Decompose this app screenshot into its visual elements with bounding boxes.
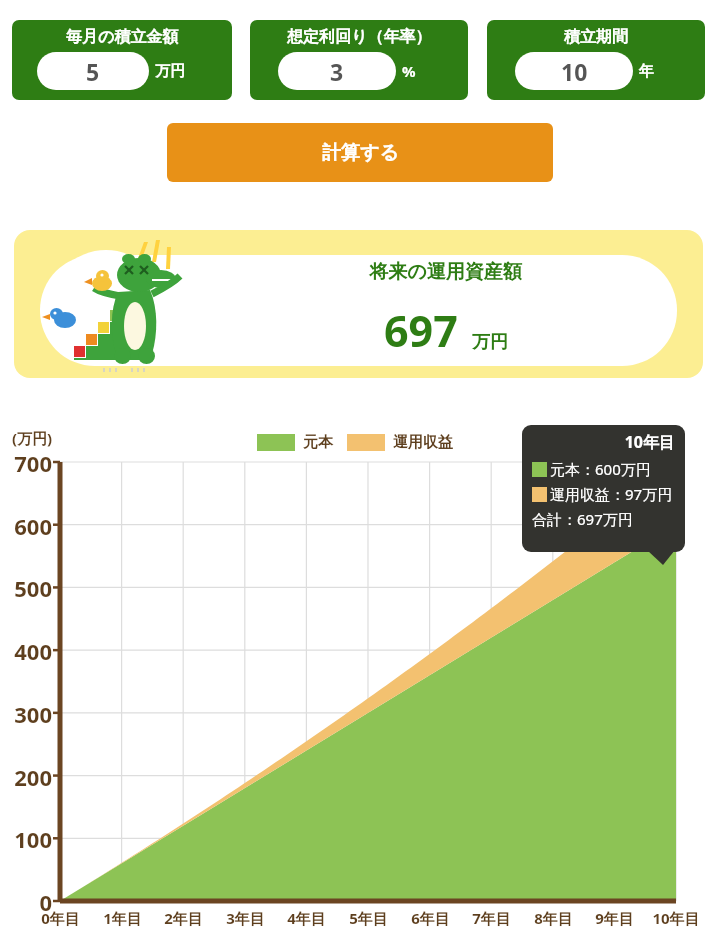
staticText: 0年目: [41, 908, 80, 928]
staticText: 合計：697万円: [532, 509, 633, 529]
staticText: 積立期間: [564, 27, 628, 47]
staticText: 運用収益: [393, 433, 453, 452]
staticText: 5: [86, 56, 100, 87]
staticText: 7年目: [472, 908, 511, 928]
staticText: 計算する: [322, 141, 399, 165]
staticText: 2年目: [164, 908, 203, 928]
staticText: 万円: [155, 62, 185, 81]
staticText: 9年目: [595, 908, 634, 928]
staticText: 200: [14, 762, 52, 792]
staticText: 600: [14, 511, 52, 541]
staticText: 100: [14, 824, 52, 854]
button[interactable]: 計算する: [167, 123, 553, 182]
staticText: 毎月の積立金額: [66, 27, 179, 47]
staticText: 年: [639, 62, 654, 81]
staticText: 697: [384, 301, 458, 360]
staticText: 10: [561, 56, 588, 87]
staticText: 将来の運用資産額: [369, 260, 522, 284]
staticText: 1年目: [103, 908, 142, 928]
staticText: 0: [39, 887, 52, 917]
staticText: (万円): [12, 428, 53, 448]
staticText: 10年目: [652, 908, 700, 928]
staticText: 元本: [303, 433, 333, 452]
staticText: 5年目: [349, 908, 388, 928]
staticText: 万円: [472, 331, 508, 354]
staticText: 3年目: [226, 908, 265, 928]
staticText: 700: [14, 448, 52, 478]
button[interactable]: 毎月の積立金額: [12, 20, 232, 100]
button[interactable]: 積立期間: [487, 20, 705, 100]
staticText: 10年目: [532, 431, 675, 453]
staticText: %: [402, 61, 416, 81]
staticText: 想定利回り（年率）: [287, 27, 432, 47]
staticText: 500: [14, 573, 52, 603]
button[interactable]: 想定利回り（年率）: [250, 20, 468, 100]
staticText: 400: [14, 636, 52, 666]
staticText: 4年目: [287, 908, 326, 928]
staticText: 300: [14, 699, 52, 729]
staticText: 運用収益：97万円: [550, 484, 673, 504]
staticText: 3: [330, 56, 344, 87]
staticText: 元本：600万円: [550, 459, 651, 479]
staticText: 6年目: [411, 908, 450, 928]
staticText: 8年目: [534, 908, 573, 928]
